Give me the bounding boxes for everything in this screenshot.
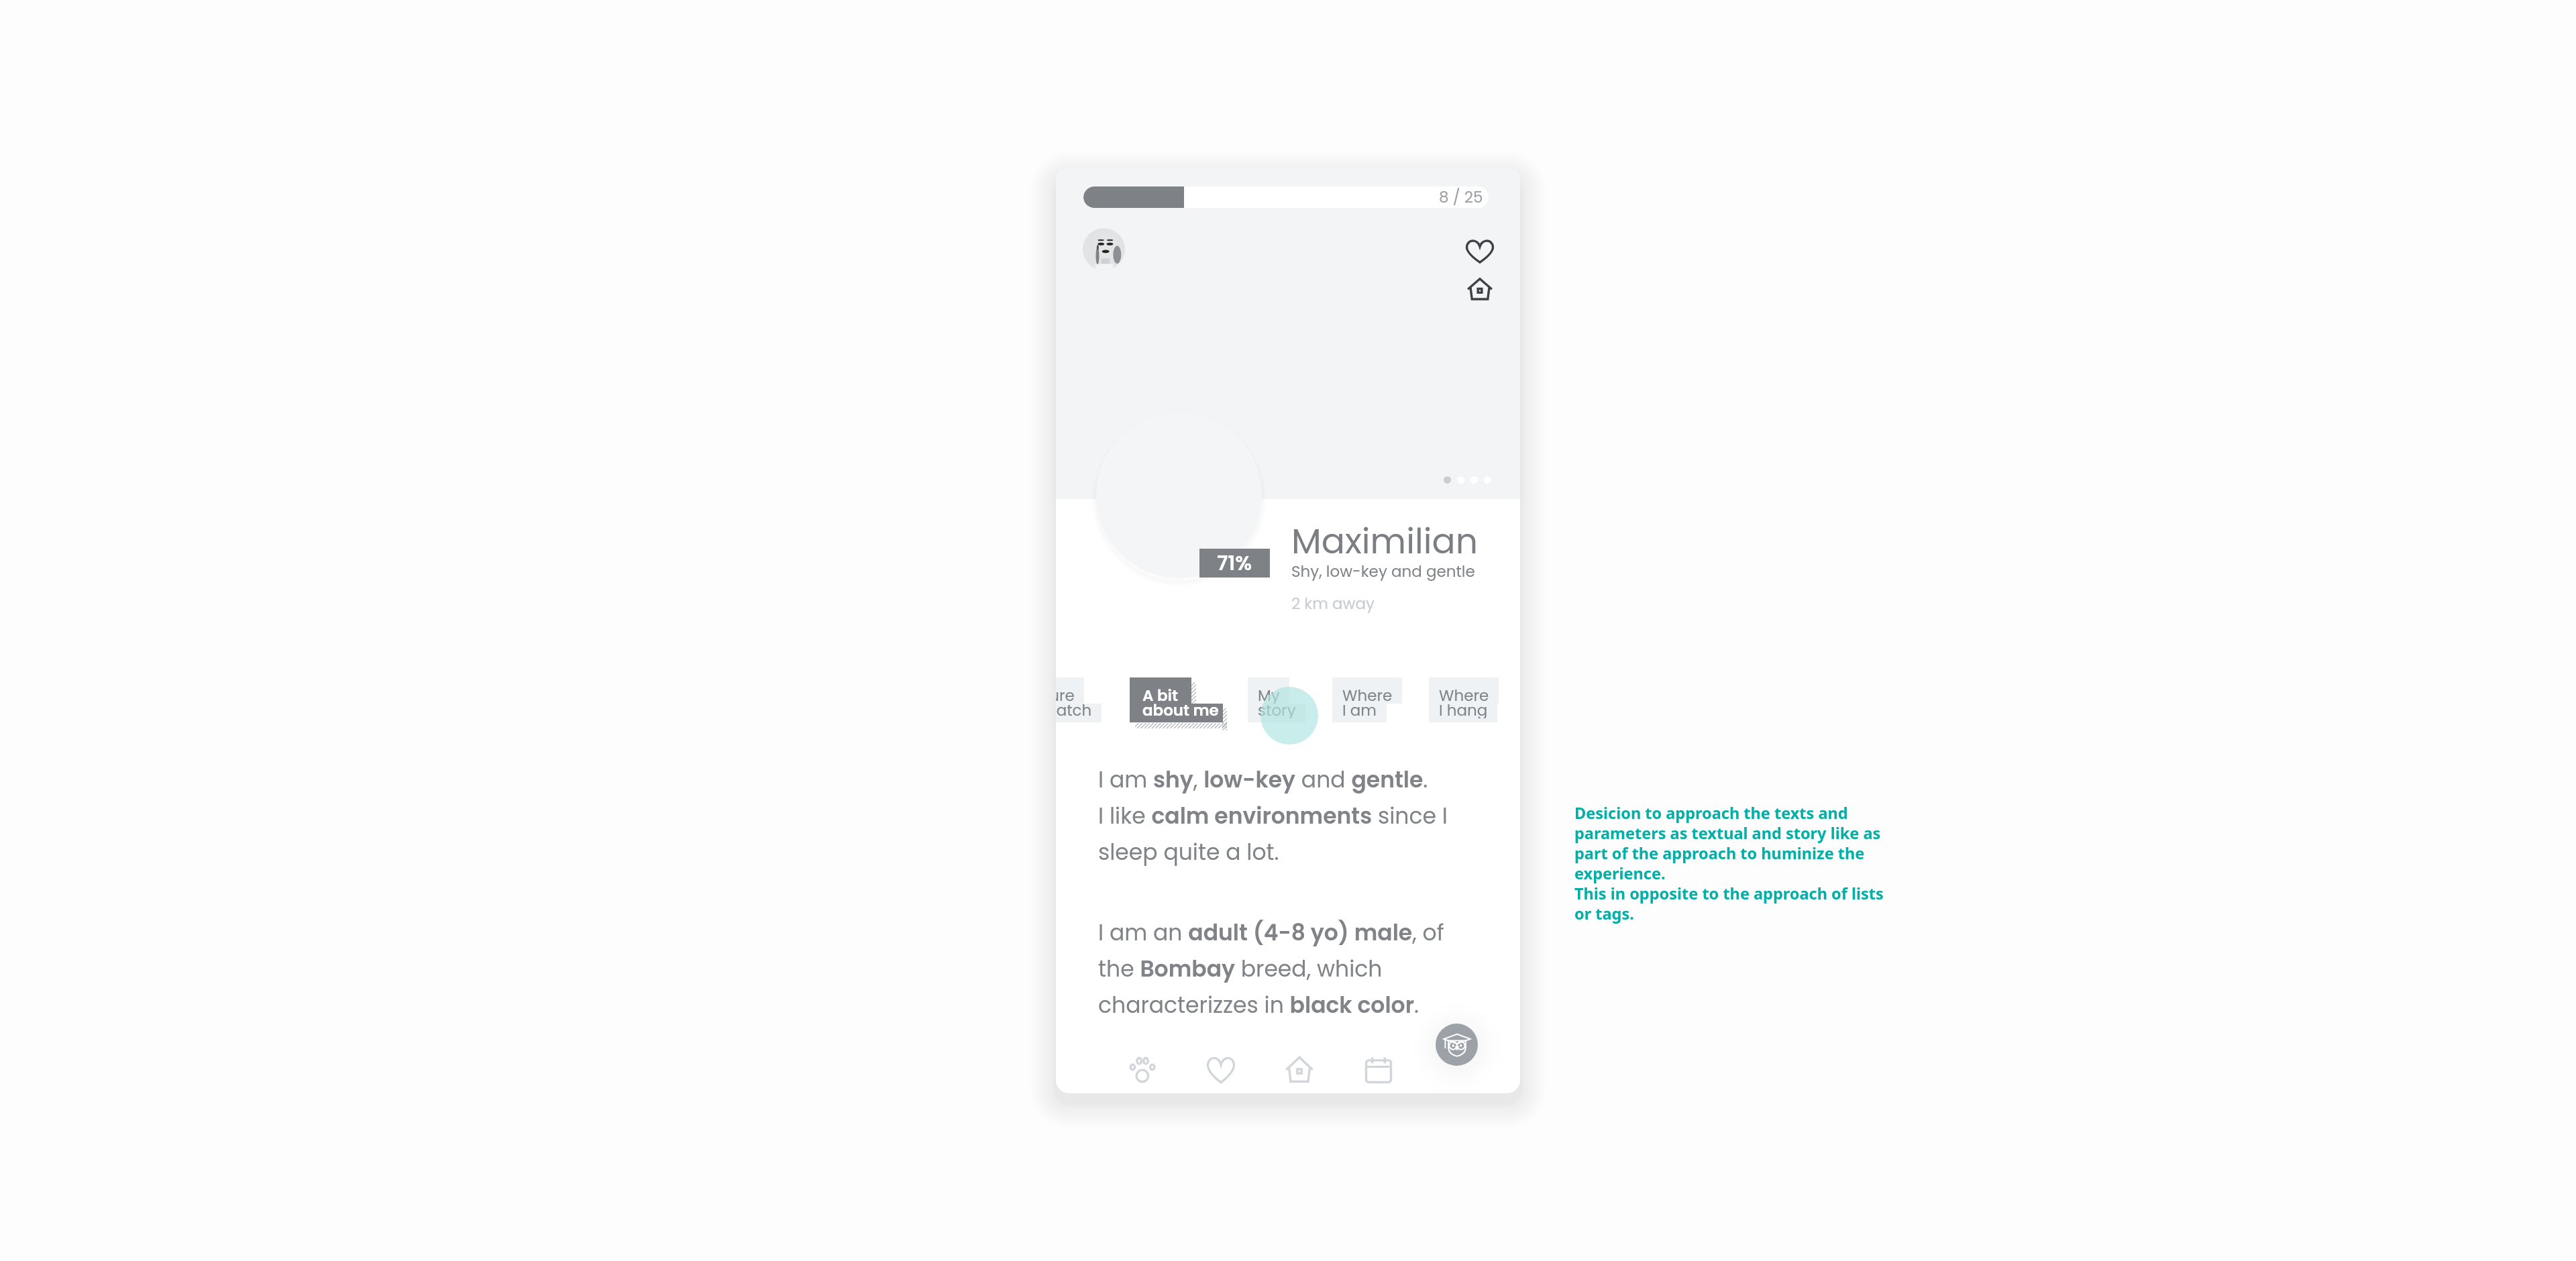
button[interactable]: Where: [1332, 677, 1402, 722]
staticText: Where: [1439, 685, 1489, 706]
staticText: Pure: [1056, 685, 1075, 706]
button[interactable]: Where: [1429, 677, 1499, 722]
button[interactable]: Learn more: [1436, 1024, 1478, 1066]
staticText: Desicion to approach the texts and param…: [1574, 802, 1884, 924]
staticText: Shy, low-key and gentle: [1291, 561, 1475, 582]
button[interactable]: Like: [1461, 232, 1499, 270]
button[interactable]: Pure: [1056, 677, 1102, 722]
button[interactable]: Photo 1 of 4: [1444, 476, 1491, 484]
button[interactable]: A bit: [1130, 677, 1223, 722]
button[interactable]: Pets: [1119, 1045, 1167, 1093]
staticText: about me: [1142, 700, 1219, 718]
staticText: story: [1258, 700, 1296, 718]
button[interactable]: My: [1248, 677, 1305, 722]
button[interactable]: Home: [1461, 270, 1499, 307]
staticText: match: [1056, 700, 1092, 718]
staticText: 2 km away: [1291, 593, 1375, 614]
staticText: My: [1258, 685, 1280, 706]
button[interactable]: Your profile: [1083, 228, 1125, 270]
staticText: Where: [1342, 685, 1393, 706]
staticText: A bit: [1142, 685, 1178, 706]
staticText: I am an adult (4-8 yo) male, of the Bomb…: [1098, 917, 1444, 1021]
button[interactable]: Calendar: [1354, 1046, 1403, 1093]
button[interactable]: Favourites: [1197, 1046, 1245, 1093]
staticText: I am: [1342, 700, 1377, 718]
staticText: I am shy, low-key and gentle. I like cal…: [1098, 764, 1448, 868]
button[interactable]: 8 / 25: [1083, 186, 1489, 208]
button[interactable]: Home: [1275, 1045, 1324, 1093]
staticText: 8 / 25: [1439, 186, 1483, 208]
staticText: 71%: [1217, 549, 1252, 578]
staticText: Maximilian: [1291, 516, 1478, 565]
staticText: I hang: [1439, 700, 1488, 718]
